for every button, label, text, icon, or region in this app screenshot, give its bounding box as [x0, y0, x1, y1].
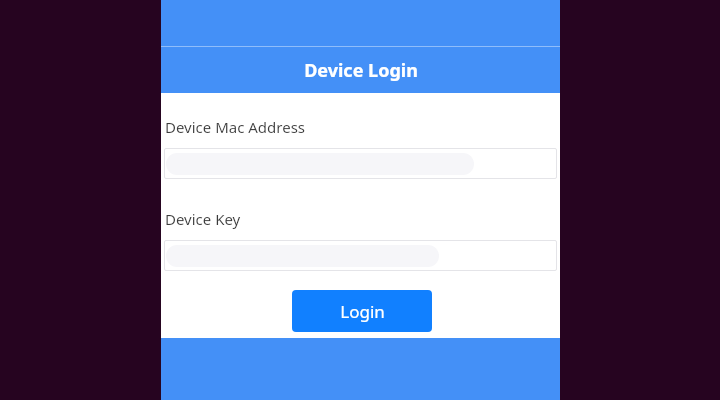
- staticText: Device Key: [165, 209, 241, 229]
- staticText: Login: [340, 300, 385, 323]
- button[interactable]: Login: [292, 290, 432, 332]
- button[interactable]: Device Mac Address input: [164, 148, 557, 179]
- staticText: Device Mac Address: [165, 117, 306, 137]
- button[interactable]: Device Key input: [164, 240, 557, 271]
- staticText: Device Login: [304, 58, 418, 83]
